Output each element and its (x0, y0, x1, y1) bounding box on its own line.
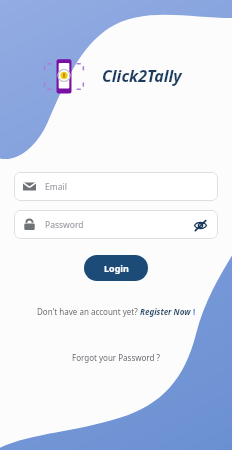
button[interactable]: Password (14, 210, 218, 239)
button[interactable]: Register Now (140, 306, 196, 317)
staticText: ! (191, 306, 196, 317)
button[interactable]: Email (14, 172, 218, 201)
staticText: Don't have an account yet? (37, 306, 140, 317)
staticText: Register Now (140, 306, 191, 317)
staticText: Click2Tally (102, 65, 182, 87)
button[interactable]: Forgot your Password ? (66, 349, 166, 366)
button[interactable]: Login (84, 255, 148, 281)
button[interactable]: Toggle password visibility (191, 216, 209, 234)
staticText: Forgot your Password ? (72, 352, 160, 363)
staticText: Password (45, 219, 84, 231)
staticText: Login (104, 262, 129, 274)
staticText: Email (45, 181, 67, 193)
